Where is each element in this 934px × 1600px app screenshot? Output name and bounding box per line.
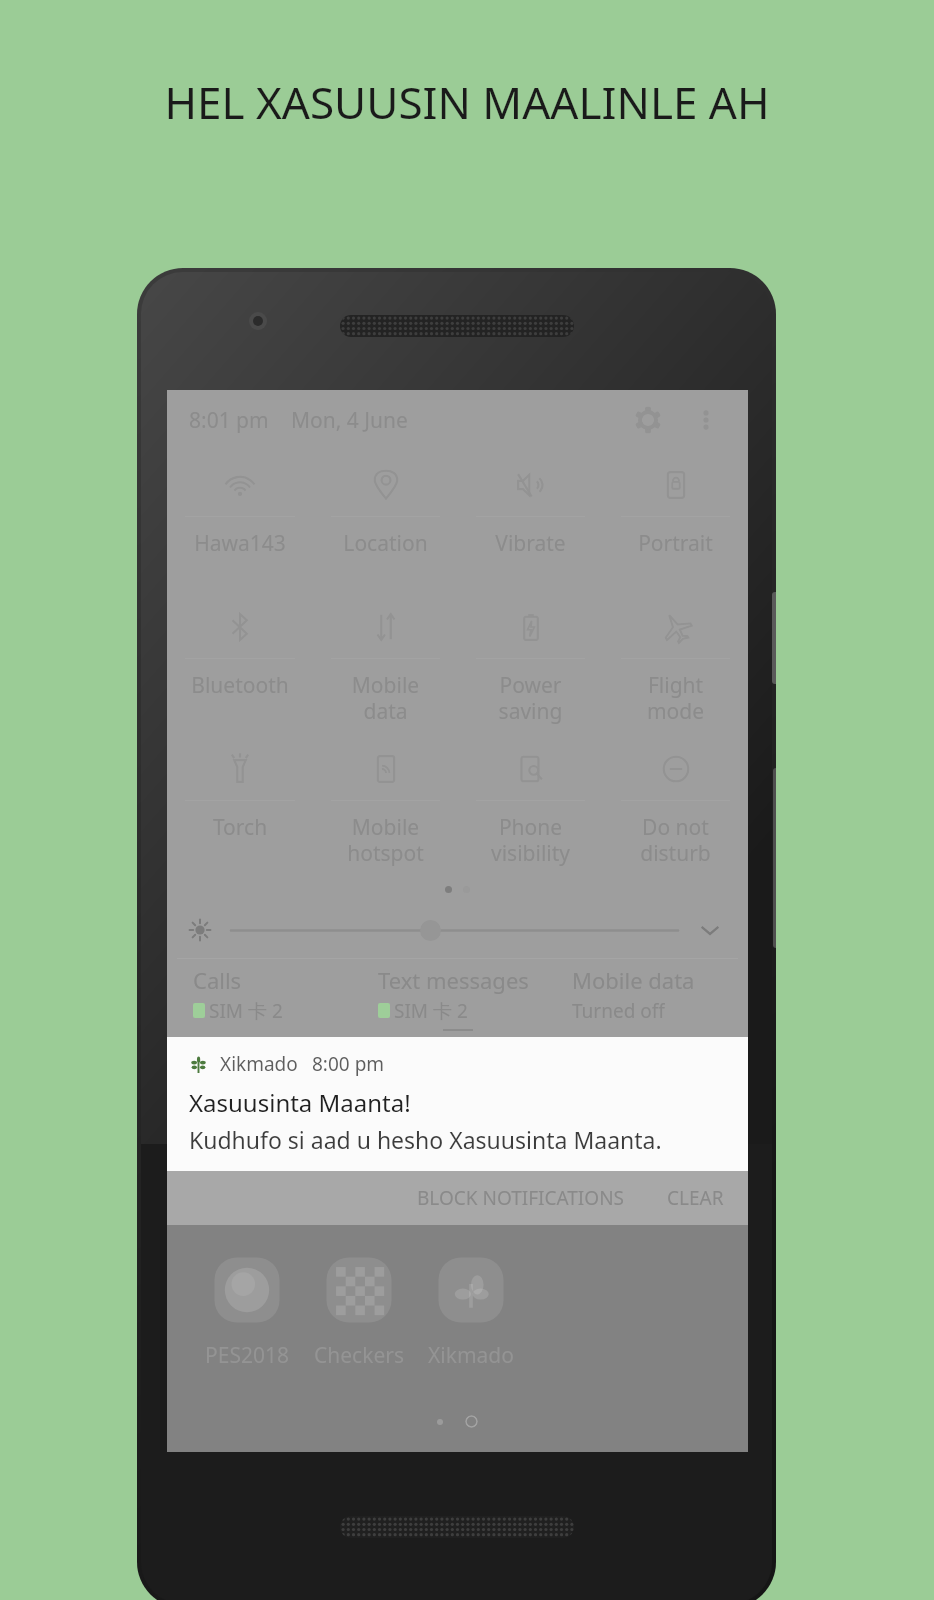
staticText: HEL XASUUSIN MAALINLE AH <box>157 72 777 132</box>
staticText: Do not disturb <box>603 813 748 868</box>
staticText: Checkers <box>303 1341 415 1370</box>
button[interactable]: Do not disturb <box>603 734 748 876</box>
button[interactable]: Mobile hotspot <box>313 734 458 876</box>
staticText: Mobile hotspot <box>313 813 458 868</box>
button[interactable]: Xikmado <box>415 1253 527 1370</box>
staticText: Xasuusinta Maanta! <box>189 1086 411 1119</box>
staticText: SIM 卡 2 <box>209 998 283 1023</box>
button[interactable]: Xikmado <box>167 1037 748 1171</box>
staticText: 8:00 pm <box>312 1051 385 1077</box>
staticText: Turned off <box>572 998 665 1023</box>
staticText: Xikmado <box>415 1341 527 1370</box>
staticText: Mobile data <box>313 671 458 726</box>
staticText: Bluetooth <box>167 671 313 700</box>
button[interactable]: Calls <box>193 965 378 1023</box>
staticText: BLOCK NOTIFICATIONS <box>417 1185 625 1211</box>
button[interactable]: Power saving <box>458 592 603 734</box>
staticText: Hawa143 <box>167 529 313 558</box>
staticText: Mon, 4 June <box>291 406 408 435</box>
staticText: CLEAR <box>667 1185 724 1211</box>
staticText: Power saving <box>458 671 603 726</box>
button[interactable]: Settings <box>628 400 668 440</box>
staticText: Torch <box>167 813 313 842</box>
staticText: Portrait <box>603 529 748 558</box>
staticText: PES2018 <box>191 1341 303 1370</box>
button[interactable]: Checkers <box>303 1253 415 1370</box>
staticText: Mobile data <box>572 965 695 995</box>
staticText: Location <box>313 529 458 558</box>
staticText: 8:01 pm <box>189 406 269 435</box>
staticText: SIM 卡 2 <box>394 998 468 1023</box>
button[interactable]: Phone visibility <box>458 734 603 876</box>
button[interactable]: BLOCK NOTIFICATIONS <box>403 1173 639 1223</box>
button[interactable]: PES2018 <box>191 1253 303 1370</box>
staticText: Flight mode <box>603 671 748 726</box>
button[interactable]: Expand <box>694 914 726 946</box>
staticText: Xikmado <box>220 1051 298 1077</box>
button[interactable]: Mobile data <box>572 965 748 1023</box>
button[interactable]: CLEAR <box>653 1173 738 1223</box>
staticText: Calls <box>193 965 242 995</box>
staticText: Vibrate <box>458 529 603 558</box>
staticText: Phone visibility <box>458 813 603 868</box>
staticText: Text messages <box>378 965 529 995</box>
button[interactable]: Text messages <box>378 965 572 1023</box>
staticText: Kudhufo si aad u hesho Xasuusinta Maanta… <box>189 1124 662 1155</box>
